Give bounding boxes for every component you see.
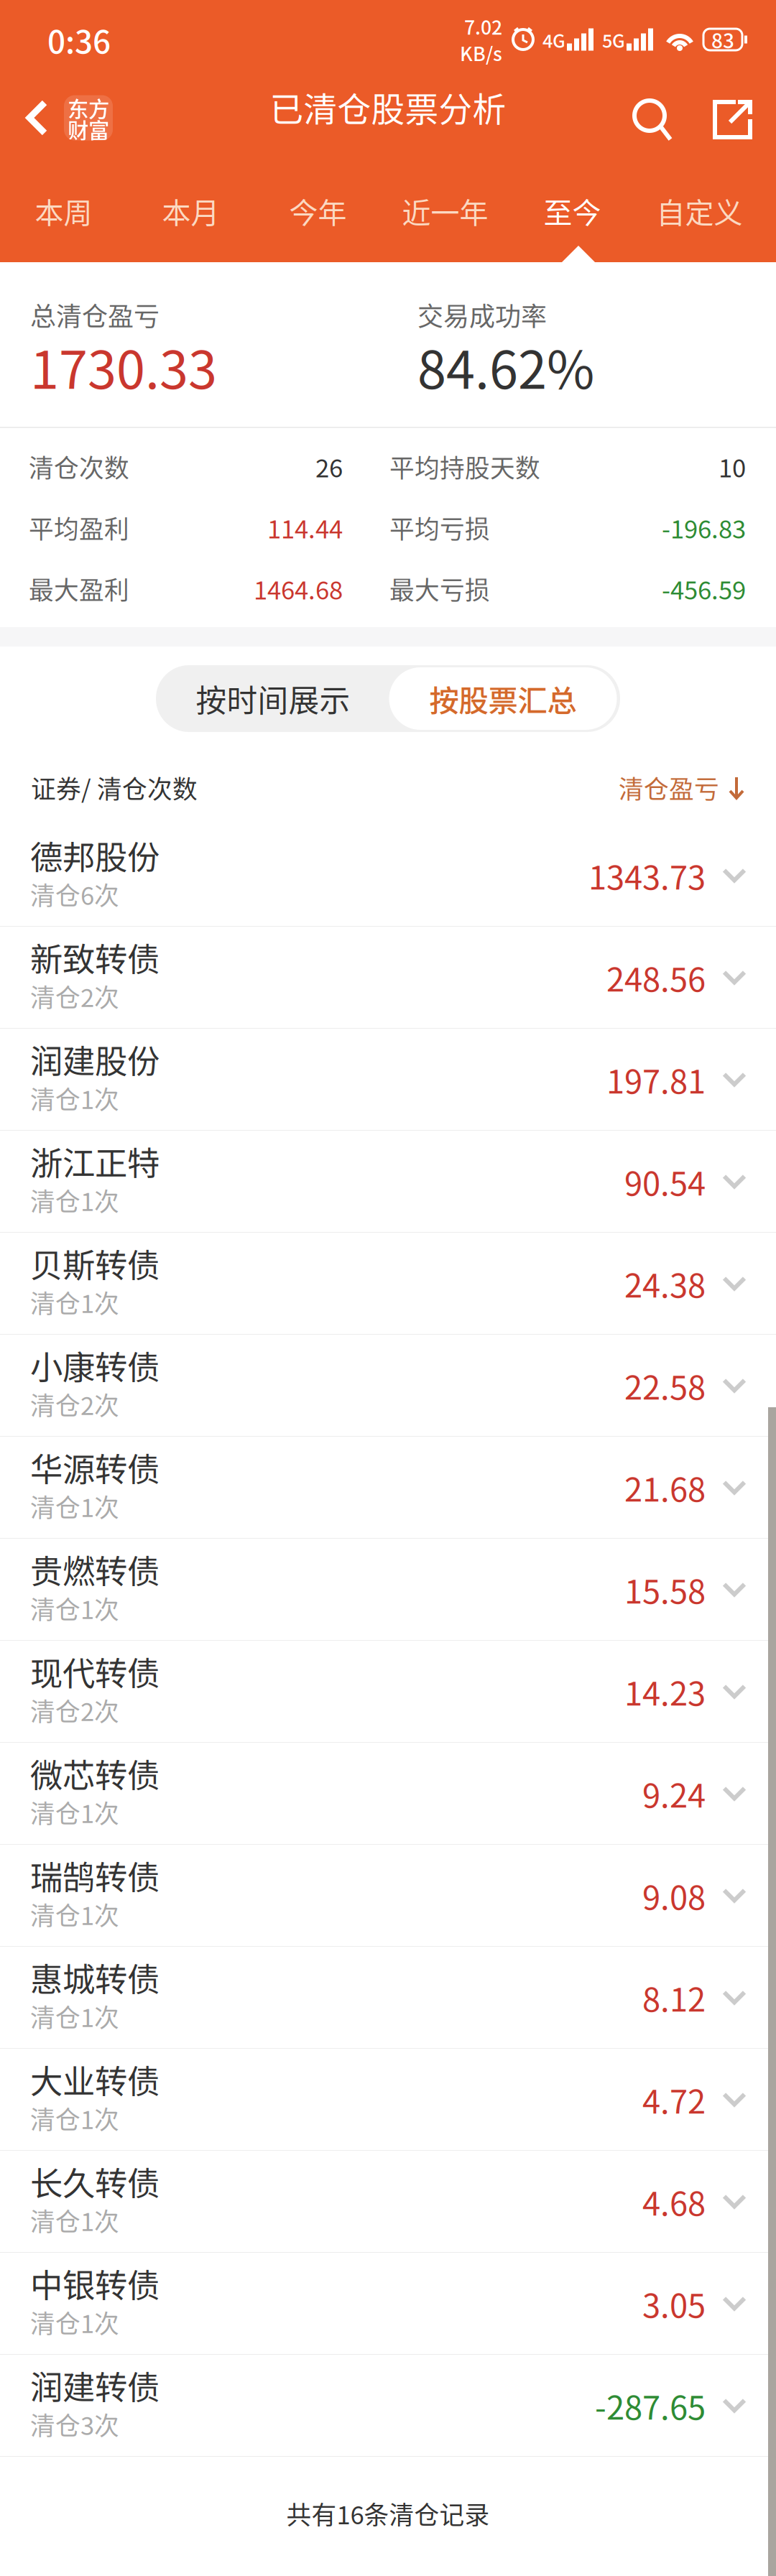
- staticText: 本月: [162, 190, 220, 232]
- staticText: 微芯转债: [30, 1750, 160, 1797]
- button[interactable]: 贵燃转债: [0, 1539, 776, 1641]
- button[interactable]: 润建股份: [0, 1029, 776, 1131]
- staticText: 清仓2次: [30, 978, 119, 1014]
- button[interactable]: 瑞鹄转债: [0, 1845, 776, 1947]
- staticText: 清仓2次: [30, 1692, 119, 1728]
- staticText: 至今: [544, 190, 601, 232]
- staticText: 小康转债: [30, 1342, 160, 1389]
- staticText: 清仓1次: [30, 2304, 119, 2340]
- button[interactable]: 现代转债: [0, 1641, 776, 1743]
- button[interactable]: 本周: [0, 147, 127, 262]
- staticText: 清仓2次: [30, 1386, 119, 1422]
- staticText: 24.38: [624, 1260, 706, 1307]
- staticText: 财富: [68, 114, 109, 145]
- button[interactable]: 长久转债: [0, 2151, 776, 2253]
- button[interactable]: 德邦股份: [0, 825, 776, 927]
- staticText: 平均持股天数: [389, 449, 540, 485]
- staticText: 华源转债: [30, 1444, 160, 1491]
- staticText: 长久转债: [30, 2158, 160, 2205]
- staticText: 大业转债: [30, 2056, 160, 2103]
- button[interactable]: 分享: [700, 79, 766, 147]
- staticText: 21.68: [624, 1464, 706, 1511]
- staticText: 自定义: [656, 190, 743, 232]
- staticText: 共有16条清仓记录: [286, 2495, 490, 2532]
- staticText: 证券/ 清仓次数: [31, 770, 198, 806]
- staticText: 今年: [289, 190, 347, 232]
- button[interactable]: 小康转债: [0, 1335, 776, 1437]
- staticText: 83: [711, 25, 734, 54]
- staticText: 5G: [602, 27, 625, 53]
- button[interactable]: 搜索: [606, 79, 700, 147]
- staticText: 清仓1次: [30, 1896, 119, 1932]
- staticText: 东方: [68, 93, 109, 123]
- staticText: 4G: [542, 27, 565, 53]
- staticText: 中银转债: [30, 2260, 160, 2307]
- button[interactable]: 按股票汇总: [389, 667, 617, 730]
- staticText: 新致转债: [30, 934, 160, 981]
- staticText: 清仓1次: [30, 1284, 119, 1320]
- staticText: 4.72: [642, 2076, 706, 2123]
- staticText: 114.44: [267, 510, 343, 546]
- staticText: 浙江正特: [30, 1138, 160, 1185]
- staticText: 润建股份: [30, 1036, 160, 1083]
- staticText: 清仓盈亏: [619, 770, 719, 806]
- staticText: 清仓1次: [30, 2202, 119, 2238]
- button[interactable]: 中银转债: [0, 2253, 776, 2355]
- button[interactable]: 至今: [509, 147, 636, 262]
- button[interactable]: 清仓盈亏: [619, 770, 745, 806]
- button[interactable]: 按时间展示: [157, 665, 389, 732]
- staticText: 7.02: [464, 12, 502, 40]
- staticText: 惠城转债: [30, 1954, 160, 2001]
- staticText: 清仓6次: [30, 876, 119, 912]
- staticText: 10: [719, 449, 746, 485]
- staticText: 德邦股份: [30, 832, 160, 879]
- staticText: 瑞鹄转债: [30, 1852, 160, 1899]
- staticText: 22.58: [624, 1362, 706, 1409]
- staticText: 清仓1次: [30, 1080, 119, 1116]
- button[interactable]: 惠城转债: [0, 1947, 776, 2049]
- staticText: 贝斯转债: [30, 1240, 160, 1287]
- button[interactable]: 本月: [127, 147, 254, 262]
- button[interactable]: 今年: [254, 147, 382, 262]
- staticText: 最大盈利: [29, 571, 129, 607]
- button[interactable]: 近一年: [382, 147, 509, 262]
- staticText: KB/s: [460, 39, 502, 67]
- staticText: 1730.33: [30, 329, 217, 404]
- staticText: 清仓1次: [30, 1590, 119, 1626]
- staticText: 清仓1次: [30, 1182, 119, 1218]
- button[interactable]: 大业转债: [0, 2049, 776, 2151]
- button[interactable]: 自定义: [636, 147, 763, 262]
- staticText: 平均亏损: [389, 510, 490, 546]
- staticText: 248.56: [606, 954, 706, 1001]
- staticText: 9.24: [642, 1770, 706, 1817]
- staticText: 清仓1次: [30, 1794, 119, 1830]
- staticText: 清仓1次: [30, 1488, 119, 1524]
- button[interactable]: 润建转债: [0, 2355, 776, 2457]
- staticText: 4.68: [642, 2178, 706, 2225]
- button[interactable]: 微芯转债: [0, 1743, 776, 1845]
- staticText: 清仓1次: [30, 2100, 119, 2136]
- staticText: 贵燃转债: [30, 1546, 160, 1593]
- staticText: 1343.73: [588, 852, 706, 899]
- button[interactable]: 华源转债: [0, 1437, 776, 1539]
- button[interactable]: 贝斯转债: [0, 1233, 776, 1335]
- staticText: 26: [315, 449, 343, 485]
- staticText: 总清仓盈亏: [30, 296, 160, 333]
- staticText: -456.59: [662, 571, 746, 607]
- staticText: 3.05: [642, 2280, 706, 2327]
- button[interactable]: 返回: [0, 79, 120, 147]
- staticText: 清仓次数: [29, 449, 129, 485]
- button[interactable]: 浙江正特: [0, 1131, 776, 1233]
- staticText: 90.54: [624, 1158, 706, 1205]
- staticText: 润建转债: [30, 2362, 160, 2409]
- staticText: 84.62%: [417, 329, 594, 404]
- staticText: 本周: [35, 190, 92, 232]
- staticText: 现代转债: [30, 1648, 160, 1695]
- staticText: -196.83: [662, 510, 746, 546]
- staticText: 平均盈利: [29, 510, 129, 546]
- staticText: 近一年: [402, 190, 488, 232]
- staticText: -287.65: [595, 2382, 706, 2429]
- button[interactable]: 新致转债: [0, 927, 776, 1029]
- staticText: 8.12: [642, 1974, 706, 2021]
- staticText: 按时间展示: [196, 676, 350, 721]
